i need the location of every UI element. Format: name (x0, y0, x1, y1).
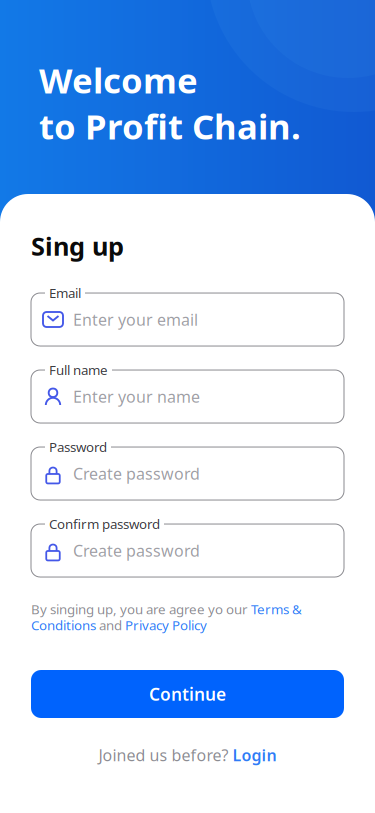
staticText: Login (232, 744, 276, 766)
staticText: to Profit Chain. (39, 103, 301, 149)
staticText: Joined us before? (98, 744, 232, 766)
staticText: Enter your name (73, 386, 200, 407)
staticText: and (96, 616, 125, 634)
staticText: Welcome (39, 57, 198, 103)
staticText: Password (49, 438, 107, 456)
staticText: Create password (73, 540, 200, 561)
staticText: Enter your email (73, 309, 198, 330)
staticText: Continue (149, 682, 226, 705)
staticText: Email (49, 284, 81, 302)
staticText: Terms & (251, 600, 302, 618)
button[interactable]: Continue (31, 670, 344, 718)
staticText: Confirm password (49, 515, 160, 533)
staticText: Conditions (31, 616, 96, 634)
staticText: Create password (73, 463, 200, 484)
button[interactable]: Login (232, 744, 276, 766)
staticText: By singing up, you are agree yo our (31, 600, 251, 618)
staticText: Sing up (31, 229, 124, 263)
staticText: Privacy Policy (125, 616, 207, 634)
staticText: Full name (49, 361, 108, 379)
